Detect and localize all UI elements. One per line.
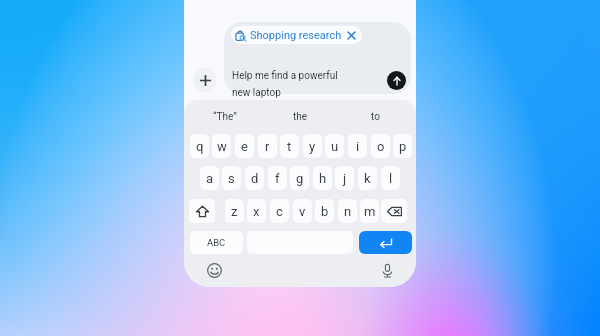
button[interactable]: q <box>190 134 209 158</box>
button[interactable]: Backspace <box>381 199 407 223</box>
staticText: ABC <box>207 237 226 248</box>
staticText: “The” <box>213 111 237 123</box>
button[interactable]: i <box>348 134 367 158</box>
staticText: l <box>389 171 393 186</box>
staticText: k <box>364 171 371 186</box>
staticText: m <box>364 204 376 219</box>
button[interactable]: y <box>303 134 322 158</box>
button[interactable]: f <box>268 166 287 190</box>
button[interactable]: “The” <box>196 106 254 128</box>
staticText: h <box>319 171 327 186</box>
staticText: n <box>344 204 352 219</box>
button[interactable]: Enter <box>359 231 412 254</box>
staticText: b <box>321 204 329 219</box>
button[interactable]: p <box>393 134 412 158</box>
button[interactable]: Emoji <box>207 263 222 278</box>
staticText: o <box>377 139 385 154</box>
button[interactable]: t <box>280 134 299 158</box>
staticText: x <box>253 204 260 219</box>
button[interactable]: the <box>271 106 329 128</box>
button[interactable]: h <box>313 166 332 190</box>
staticText: a <box>206 171 214 186</box>
staticText: t <box>287 139 292 154</box>
button[interactable]: to <box>346 106 404 128</box>
staticText: f <box>275 171 280 186</box>
staticText: c <box>276 204 283 219</box>
staticText: p <box>399 139 407 154</box>
staticText: z <box>231 204 238 219</box>
staticText: the <box>293 111 308 123</box>
button[interactable]: g <box>290 166 309 190</box>
button[interactable]: c <box>270 199 289 223</box>
button[interactable]: Shift <box>189 199 215 223</box>
button[interactable]: Add attachment <box>193 68 217 92</box>
button[interactable]: Send <box>387 71 406 90</box>
staticText: r <box>265 139 270 154</box>
staticText: j <box>343 171 347 186</box>
staticText: d <box>251 171 259 186</box>
button[interactable]: r <box>258 134 277 158</box>
button[interactable]: b <box>315 199 334 223</box>
button[interactable]: m <box>360 199 379 223</box>
staticText: s <box>228 171 235 186</box>
button[interactable]: n <box>338 199 357 223</box>
staticText: to <box>371 111 380 123</box>
staticText: i <box>356 139 360 154</box>
button[interactable]: e <box>235 134 254 158</box>
button[interactable]: o <box>371 134 390 158</box>
staticText: u <box>331 139 339 154</box>
button[interactable]: ABC <box>190 231 243 254</box>
staticText: Shopping research <box>250 29 342 42</box>
button[interactable]: x <box>247 199 266 223</box>
button[interactable]: j <box>335 166 354 190</box>
button[interactable]: l <box>381 166 400 190</box>
staticText: w <box>217 139 227 154</box>
button[interactable]: d <box>245 166 264 190</box>
button[interactable]: s <box>222 166 241 190</box>
button[interactable]: w <box>212 134 231 158</box>
staticText: g <box>296 171 304 186</box>
staticText: v <box>299 204 306 219</box>
staticText: q <box>196 139 204 154</box>
button[interactable]: u <box>325 134 344 158</box>
staticText: y <box>309 139 316 154</box>
staticText: e <box>241 139 248 154</box>
button[interactable]: Shopping research <box>231 26 362 44</box>
button[interactable]: a <box>200 166 219 190</box>
button[interactable]: z <box>225 199 244 223</box>
button[interactable]: v <box>293 199 312 223</box>
button[interactable]: k <box>358 166 377 190</box>
staticText: Help me find a powerful new laptop <box>232 70 338 98</box>
button[interactable]: Voice input <box>380 263 395 278</box>
